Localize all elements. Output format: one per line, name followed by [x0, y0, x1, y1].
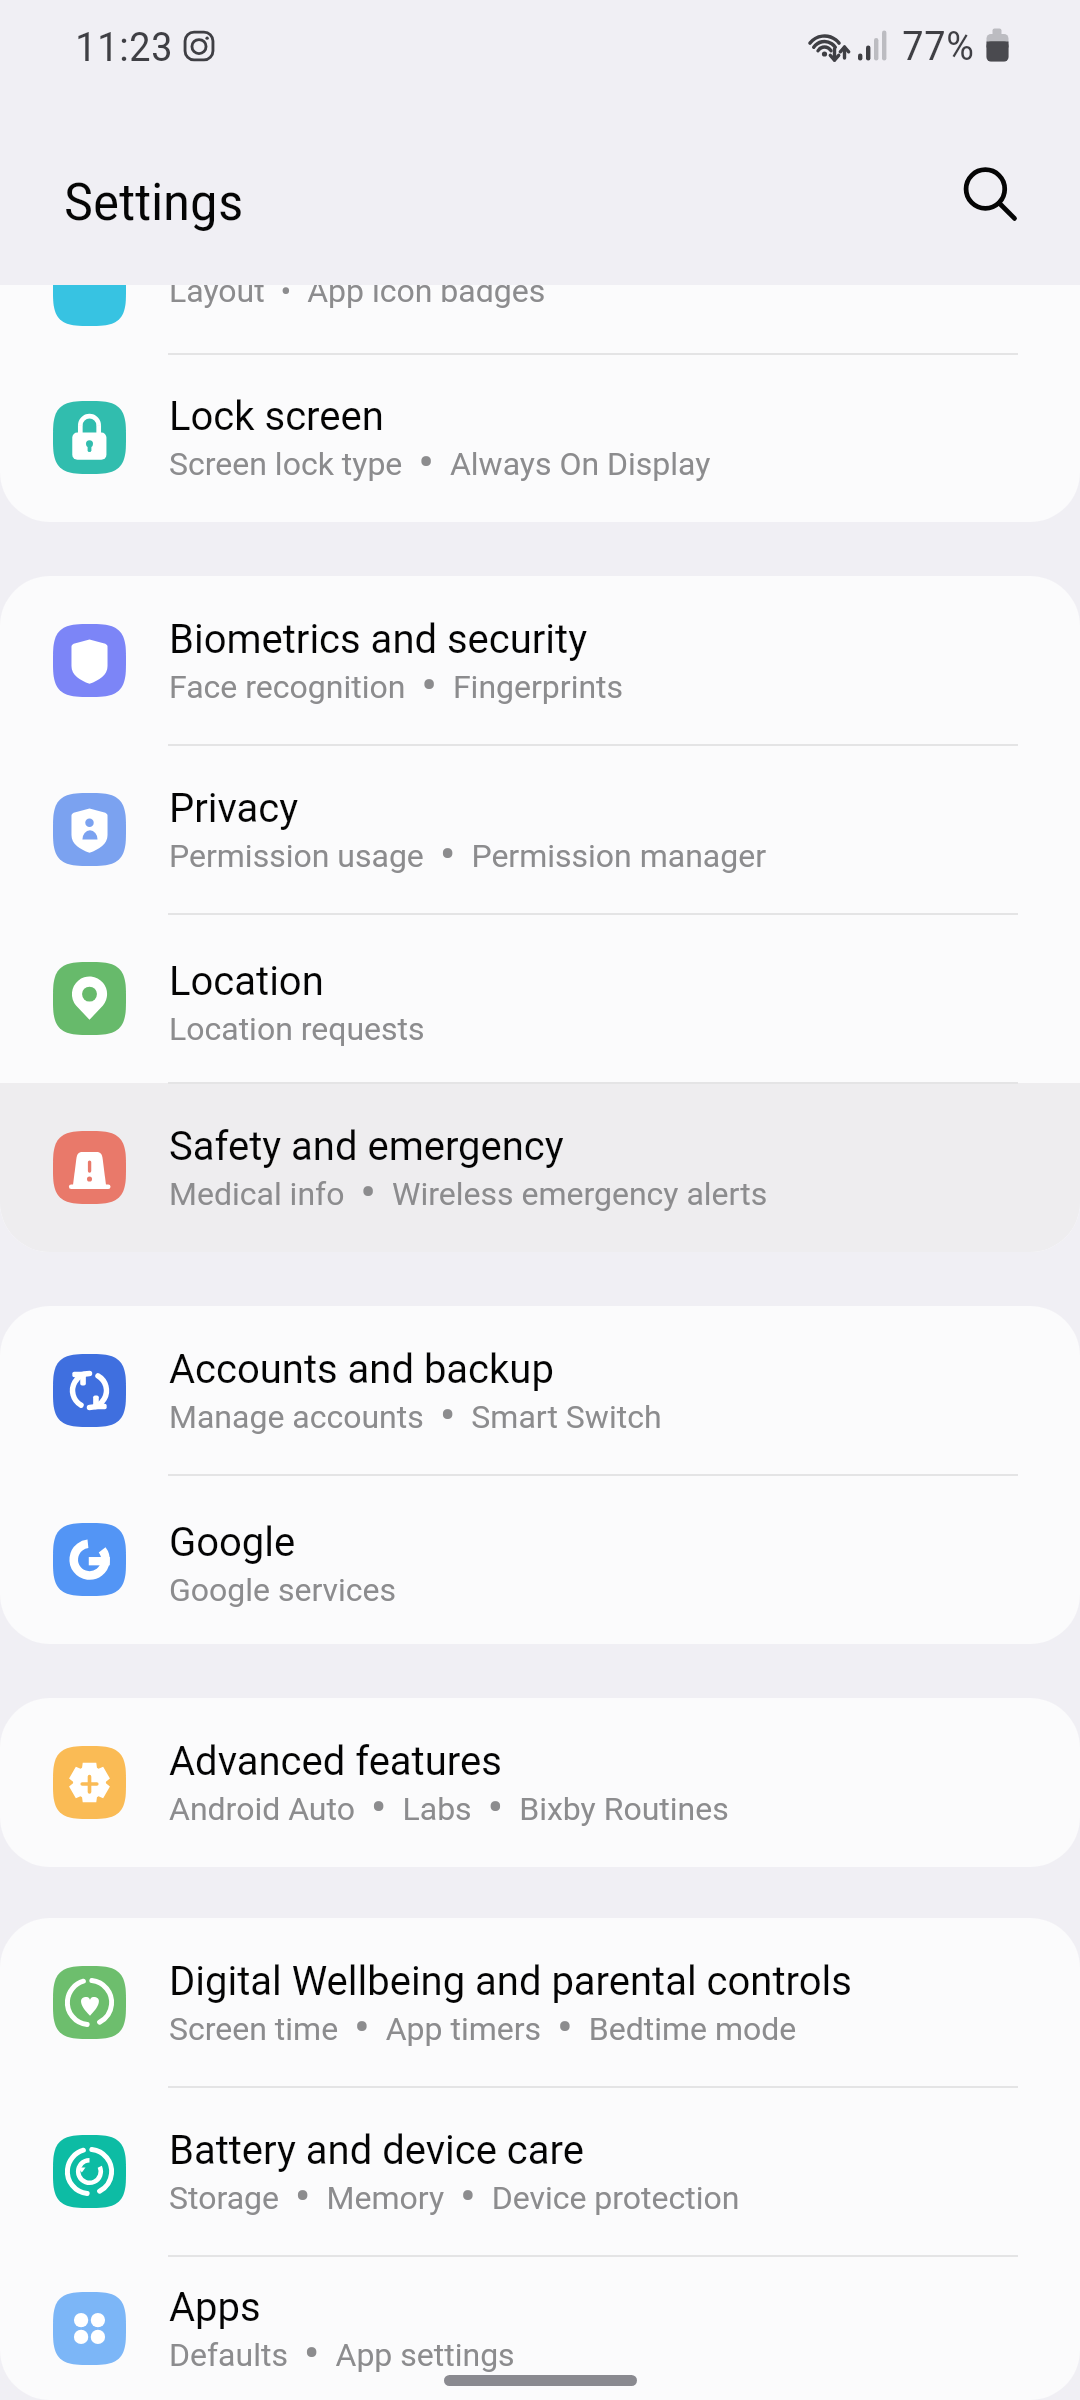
staticText: Digital Wellbeing and parental controls	[169, 1958, 852, 2005]
button[interactable]: Safety and emergency	[0, 1083, 1080, 1252]
button[interactable]: Advanced features	[0, 1698, 1080, 1867]
button[interactable]: Accounts and backup	[0, 1306, 1080, 1475]
staticText: Apps	[169, 2284, 261, 2331]
button[interactable]: Digital Wellbeing and parental controls	[0, 1918, 1080, 2087]
button[interactable]: Battery and device care	[0, 2087, 1080, 2256]
staticText: Permission usage • Permission manager	[169, 837, 767, 882]
staticText: Screen lock type • Always On Display	[169, 445, 711, 490]
button[interactable]: Lock screen	[0, 353, 1080, 522]
staticText: Android Auto • Labs • Bixby Routines	[169, 1790, 729, 1835]
staticText: Google	[169, 1519, 296, 1566]
staticText: Storage • Memory • Device protection	[169, 2179, 740, 2224]
staticText: Advanced features	[169, 1738, 502, 1785]
staticText: Face recognition • Fingerprints	[169, 668, 624, 713]
staticText: Lock screen	[169, 393, 384, 440]
staticText: Battery and device care	[169, 2127, 584, 2174]
staticText: Safety and emergency	[169, 1123, 564, 1170]
staticText: Layout • App icon badges	[169, 285, 546, 310]
button[interactable]: Apps	[0, 2256, 1080, 2400]
button[interactable]: Privacy	[0, 745, 1080, 914]
staticText: Location requests	[169, 1010, 425, 1048]
staticText: Biometrics and security	[169, 616, 588, 663]
button[interactable]: Google	[0, 1475, 1080, 1644]
staticText: Medical info • Wireless emergency alerts	[169, 1175, 768, 1220]
staticText: Manage accounts • Smart Switch	[169, 1398, 662, 1443]
button[interactable]: Location	[0, 914, 1080, 1083]
button[interactable]: Search	[943, 148, 1039, 244]
staticText: Privacy	[169, 785, 299, 832]
staticText: Location	[169, 958, 324, 1005]
staticText: Screen time • App timers • Bedtime mode	[169, 2010, 797, 2055]
staticText: Google services	[169, 1571, 397, 1609]
button[interactable]: Biometrics and security	[0, 576, 1080, 745]
staticText: Accounts and backup	[169, 1346, 554, 1393]
staticText: Defaults • App settings	[169, 2336, 515, 2381]
